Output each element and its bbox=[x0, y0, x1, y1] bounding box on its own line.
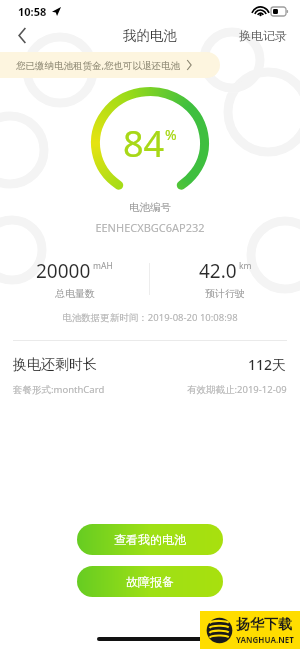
staticText: mAH bbox=[93, 260, 113, 272]
staticText: 换电还剩时长 bbox=[13, 356, 97, 374]
staticText: 112天 bbox=[248, 355, 287, 374]
button[interactable]: 换电还剩时长 bbox=[0, 355, 300, 374]
staticText: 换电记录 bbox=[239, 28, 287, 43]
staticText: 电池编号 bbox=[0, 201, 300, 214]
staticText: 故障报备 bbox=[126, 574, 174, 589]
staticText: 套餐形式:monthCard bbox=[13, 383, 105, 396]
staticText: 42.0 bbox=[199, 258, 237, 284]
button[interactable]: 换电记录 bbox=[226, 22, 300, 48]
staticText: 您已缴纳电池租赁金,您也可以退还电池 bbox=[16, 59, 181, 72]
staticText: 我的电池 bbox=[123, 27, 177, 44]
staticText: 预计行驶 bbox=[205, 287, 245, 300]
staticText: 扬华下载 bbox=[236, 616, 292, 634]
staticText: 10:58 bbox=[18, 4, 47, 19]
staticText: 有效期截止:2019-12-09 bbox=[187, 383, 287, 396]
staticText: km bbox=[239, 260, 252, 272]
staticText: 20000 bbox=[36, 258, 91, 284]
button[interactable]: Back bbox=[0, 22, 44, 48]
button[interactable]: 您已缴纳电池租赁金,您也可以退还电池 bbox=[0, 52, 220, 78]
staticText: 总电量数 bbox=[55, 287, 95, 300]
button[interactable]: 查看我的电池 bbox=[77, 524, 223, 555]
staticText: 查看我的电池 bbox=[114, 532, 186, 547]
button[interactable]: 故障报备 bbox=[77, 566, 223, 597]
staticText: 电池数据更新时间：2019-08-20 10:08:98 bbox=[0, 311, 300, 324]
staticText: EENHECXBGC6AP232 bbox=[0, 220, 300, 235]
staticText: 84 bbox=[123, 119, 165, 168]
staticText: % bbox=[165, 125, 177, 144]
staticText: YANGHUA.NET bbox=[236, 634, 294, 645]
